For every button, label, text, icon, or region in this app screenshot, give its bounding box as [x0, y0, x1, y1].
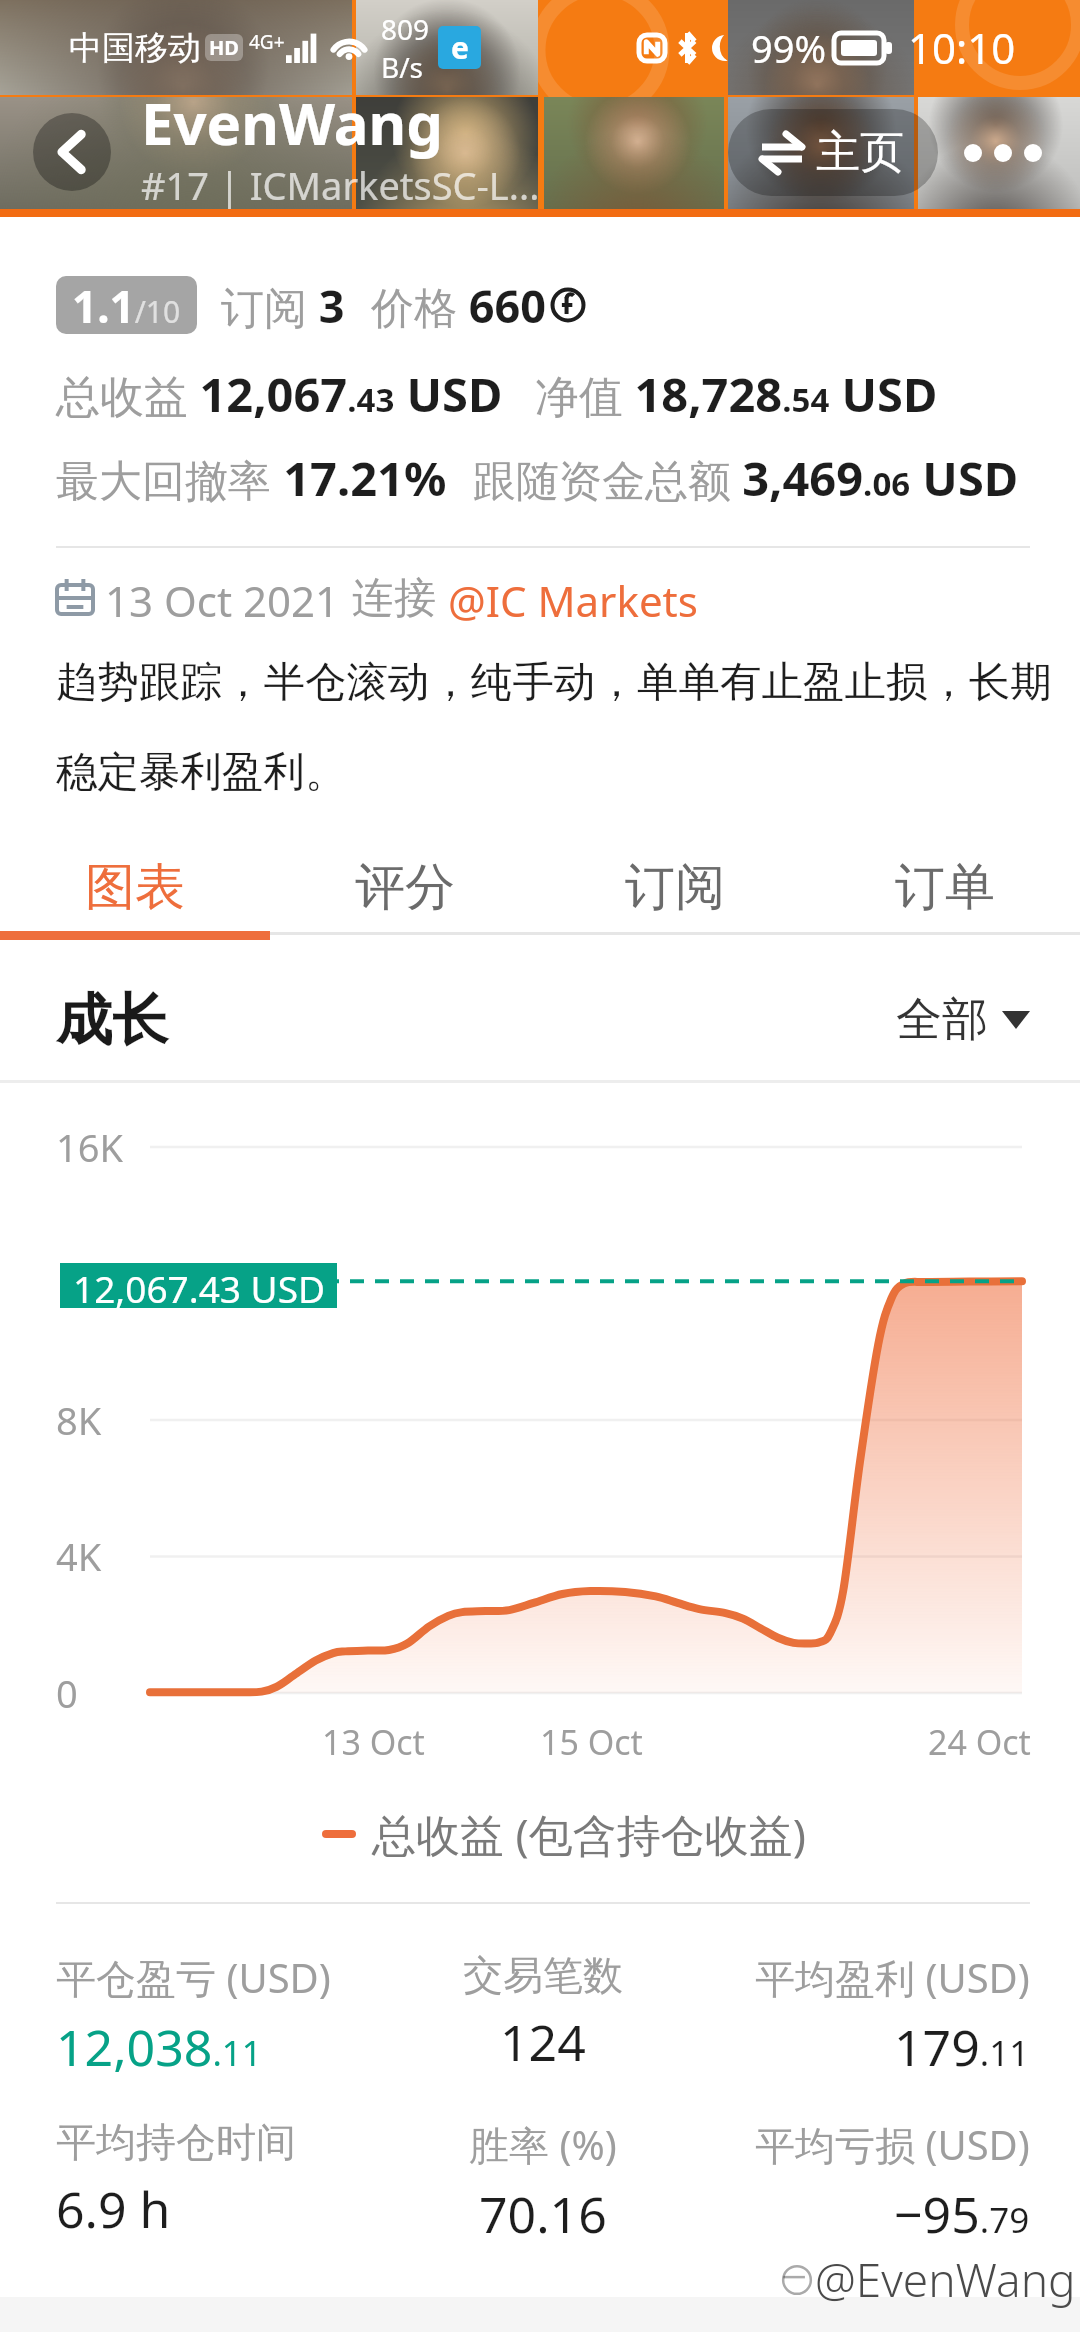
staticText: @IC Markets [448, 572, 698, 622]
staticText: 总收益 (包含持仓收益) [372, 1804, 806, 1864]
staticText: 评分 [355, 856, 455, 919]
staticText: 跟随资金总额 3,469.06 USD [473, 446, 1019, 510]
button[interactable]: Back [33, 113, 111, 191]
staticText: 99% [751, 22, 827, 74]
button[interactable]: 主页 [728, 109, 938, 196]
staticText: 1.1/10 [72, 276, 181, 334]
button[interactable]: 订阅 [540, 840, 810, 934]
staticText: 连接 [352, 572, 436, 622]
staticText: 成长 [56, 985, 168, 1056]
staticText: 稳定暴利盈利。 [56, 746, 347, 798]
staticText: HD [209, 34, 239, 61]
staticText: 0 [56, 1667, 78, 1719]
button[interactable]: 评分 [270, 840, 540, 934]
staticText: 胜率 (%) [469, 2117, 617, 2172]
staticText: 12,038.11 [56, 2013, 262, 2081]
button[interactable]: 图表 [0, 840, 270, 934]
staticText: 4K [56, 1530, 102, 1582]
staticText: 图表 [85, 856, 185, 919]
staticText: −95.79 [894, 2180, 1030, 2248]
staticText: 809 [381, 10, 430, 48]
staticText: 8K [56, 1394, 102, 1446]
staticText: @EvenWang [815, 2248, 1076, 2311]
staticText: 10:10 [908, 19, 1016, 76]
staticText: 订单 [895, 856, 995, 919]
staticText: 15 Oct [540, 1719, 643, 1765]
button[interactable]: 订单 [810, 840, 1080, 934]
staticText: 订阅 3 [221, 275, 345, 336]
staticText: 16K [56, 1121, 123, 1173]
button[interactable]: More options [946, 124, 1060, 182]
staticText: EvenWang [141, 83, 443, 162]
staticText: 价格 660 [371, 275, 546, 336]
staticText: #17 | ICMarketsSC-L... [141, 159, 540, 209]
staticText: 总收益 12,067.43 USD [56, 362, 503, 426]
staticText: 交易笔数 [463, 1950, 623, 2000]
staticText: 4G+ [249, 29, 285, 55]
staticText: 中国移动 [69, 27, 201, 69]
staticText: 平均持仓时间 [56, 2117, 296, 2167]
staticText: 13 Oct 2021 [105, 572, 340, 622]
staticText: 主页 [816, 125, 904, 180]
staticText: 179.11 [894, 2013, 1030, 2081]
staticText: 70.16 [479, 2180, 607, 2248]
staticText: 24 Oct [928, 1719, 1031, 1765]
button[interactable]: 全部 [896, 991, 1030, 1049]
staticText: 124 [500, 2008, 586, 2076]
staticText: 13 Oct [322, 1719, 425, 1765]
staticText: 平仓盈亏 (USD) [56, 1950, 331, 2005]
staticText: 平均亏损 (USD) [755, 2117, 1030, 2172]
staticText: 6.9 h [56, 2175, 171, 2243]
staticText: 最大回撤率 17.21% [56, 446, 447, 510]
staticText: B/s [381, 48, 424, 86]
staticText: 趋势跟踪，半仓滚动，纯手动，单单有止盈止损，长期 [56, 656, 1052, 708]
staticText: 12,067.43 USD [73, 1263, 325, 1308]
staticText: 平均盈利 (USD) [755, 1950, 1030, 2005]
staticText: 净值 18,728.54 USD [535, 362, 938, 426]
staticText: 全部 [896, 991, 988, 1049]
staticText: e [451, 27, 469, 68]
staticText: 订阅 [625, 856, 725, 919]
